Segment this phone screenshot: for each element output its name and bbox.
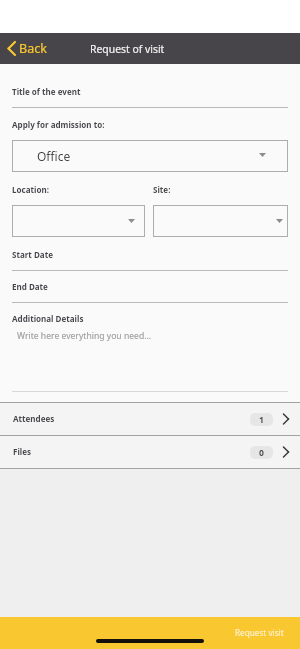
button[interactable]: Additional Details <box>0 304 300 392</box>
button[interactable]: Title of the event <box>0 78 300 108</box>
staticText: Title of the event <box>12 86 81 97</box>
button[interactable]: Apply for admission to <box>12 140 288 172</box>
staticText: Files <box>13 446 32 457</box>
button[interactable]: Attendees <box>0 403 300 435</box>
staticText: Request of visit <box>90 42 165 56</box>
staticText: Write here everything you need... <box>17 330 152 342</box>
staticText: Site: <box>153 184 171 195</box>
staticText: 0 <box>259 447 264 459</box>
staticText: Office <box>37 148 71 164</box>
staticText: Request visit <box>235 627 284 638</box>
staticText: Start Date <box>12 249 53 260</box>
button[interactable]: End Date <box>0 273 300 303</box>
button[interactable]: Files <box>0 436 300 468</box>
staticText: Apply for admission to: <box>12 119 105 130</box>
staticText: Location: <box>12 184 49 195</box>
staticText: Attendees <box>13 413 55 424</box>
staticText: Additional Details <box>12 313 84 324</box>
button[interactable]: Request visit <box>0 617 300 649</box>
staticText: Back <box>19 40 48 57</box>
button[interactable]: Location <box>12 205 145 237</box>
button[interactable]: Site <box>153 205 288 237</box>
staticText: End Date <box>12 281 48 292</box>
staticText: 1 <box>259 414 264 426</box>
button[interactable]: Back <box>0 35 58 62</box>
button[interactable]: Start Date <box>0 241 300 271</box>
